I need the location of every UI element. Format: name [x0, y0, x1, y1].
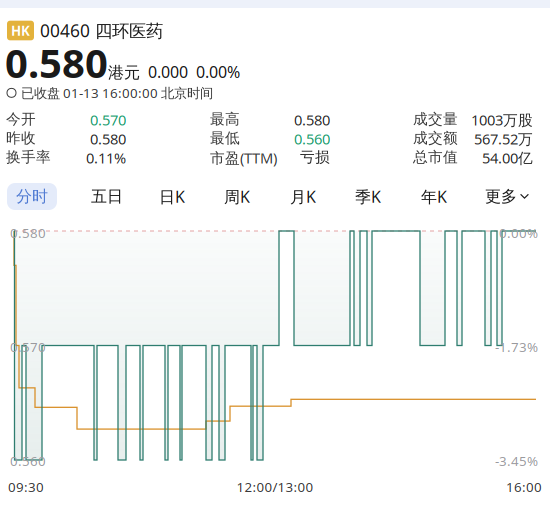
staticText: 0.580 — [294, 110, 330, 129]
staticText: 0.560 — [10, 452, 46, 470]
staticText: 今开 — [6, 110, 36, 128]
staticText: 0.580 — [90, 129, 126, 148]
staticText: 年K — [421, 186, 447, 207]
button[interactable]: 年K — [409, 183, 459, 210]
staticText: 最低 — [210, 129, 240, 147]
staticText: 最高 — [210, 110, 240, 128]
staticText: 日K — [159, 186, 185, 207]
staticText: -3.45% — [495, 452, 538, 470]
staticText: 0.570 — [90, 110, 126, 129]
staticText: 分时 — [16, 187, 48, 206]
staticText: 16:00 — [506, 478, 542, 496]
staticText: 更多 — [485, 187, 517, 206]
staticText: 市盈(TTM) — [210, 148, 277, 167]
staticText: 0.00% — [499, 224, 538, 242]
staticText: 已收盘 01-13 16:00:00 北京时间 — [21, 84, 213, 102]
button[interactable]: 分时 — [7, 183, 57, 210]
button[interactable]: 更多 — [476, 183, 538, 210]
button[interactable]: 季K — [343, 183, 393, 210]
staticText: 季K — [355, 186, 381, 207]
staticText: 0.570 — [10, 338, 46, 356]
staticText: 周K — [224, 186, 250, 207]
staticText: 昨收 — [6, 129, 36, 147]
button[interactable]: 日K — [147, 183, 197, 210]
staticText: 换手率 — [6, 148, 51, 166]
staticText: 总市值 — [413, 148, 458, 166]
staticText: 1003万股 — [471, 110, 533, 129]
staticText: 0.560 — [294, 129, 330, 148]
staticText: 567.52万 — [474, 129, 533, 148]
staticText: 0.580 — [5, 36, 108, 89]
staticText: 港元 — [108, 63, 140, 83]
staticText: 0.000 0.00% — [140, 61, 240, 82]
button[interactable]: 月K — [278, 183, 328, 210]
staticText: 成交量 — [413, 110, 458, 128]
staticText: 亏损 — [300, 148, 330, 166]
staticText: 12:00/13:00 — [236, 478, 313, 496]
staticText: 成交额 — [413, 129, 458, 147]
button[interactable]: 周K — [212, 183, 262, 210]
staticText: 0.580 — [10, 224, 46, 242]
staticText: 0.11% — [86, 148, 126, 167]
button[interactable]: 五日 — [82, 183, 132, 210]
staticText: 09:30 — [8, 478, 44, 496]
staticText: 00460 四环医药 — [40, 19, 163, 42]
staticText: -1.73% — [495, 338, 538, 356]
staticText: 54.00亿 — [482, 148, 533, 167]
staticText: HK — [11, 22, 30, 39]
staticText: 月K — [290, 186, 316, 207]
staticText: 五日 — [91, 187, 123, 206]
